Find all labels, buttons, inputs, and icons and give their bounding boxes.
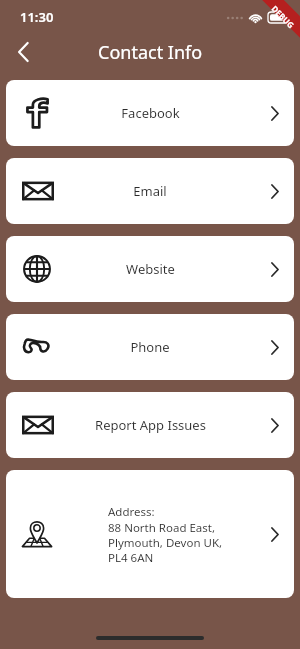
staticText: DEBUG xyxy=(269,3,297,31)
button[interactable]: Address: 88 North Road East, Plymouth, D… xyxy=(6,470,294,598)
button[interactable]: Facebook xyxy=(6,80,294,146)
staticText: Email xyxy=(133,182,167,200)
button[interactable]: Email xyxy=(6,158,294,224)
staticText: Website xyxy=(126,260,175,278)
button[interactable]: Phone xyxy=(6,314,294,380)
button[interactable]: Report App Issues xyxy=(6,392,294,458)
staticText: Phone xyxy=(130,338,170,356)
staticText: Address: 88 North Road East, Plymouth, D… xyxy=(108,504,223,565)
staticText: Facebook xyxy=(121,104,180,122)
staticText: Contact Info xyxy=(98,40,203,65)
button[interactable]: Back xyxy=(8,37,38,67)
button[interactable]: Website xyxy=(6,236,294,302)
staticText: Report App Issues xyxy=(95,416,206,434)
staticText: 11:30 xyxy=(20,8,54,26)
